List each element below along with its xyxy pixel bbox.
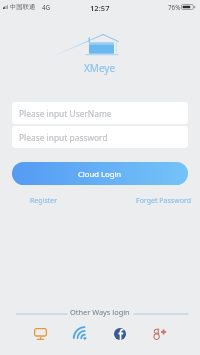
staticText: 中国联通 <box>10 3 36 11</box>
button[interactable]: Register <box>30 196 58 206</box>
staticText: Please input password <box>19 132 108 143</box>
staticText: Cloud Login <box>78 169 122 179</box>
button[interactable]: Please input UserName <box>12 102 188 124</box>
staticText: Please input UserName <box>19 108 112 119</box>
staticText: 12:57 <box>90 3 110 13</box>
button[interactable]: Device login <box>30 326 50 342</box>
staticText: XMeye <box>84 61 116 75</box>
staticText: Forget Password <box>136 196 191 206</box>
staticText: 76% <box>168 3 181 12</box>
button[interactable]: WiFi login <box>70 326 90 342</box>
button[interactable]: Forget Password <box>136 196 191 206</box>
button[interactable]: Please input password <box>12 126 188 148</box>
button[interactable]: Cloud Login <box>12 162 188 185</box>
button[interactable]: Facebook login <box>110 326 130 342</box>
staticText: 4G <box>42 3 51 12</box>
staticText: Other Ways login <box>70 307 130 317</box>
button[interactable]: Google plus login <box>150 326 170 342</box>
staticText: Register <box>30 196 58 206</box>
